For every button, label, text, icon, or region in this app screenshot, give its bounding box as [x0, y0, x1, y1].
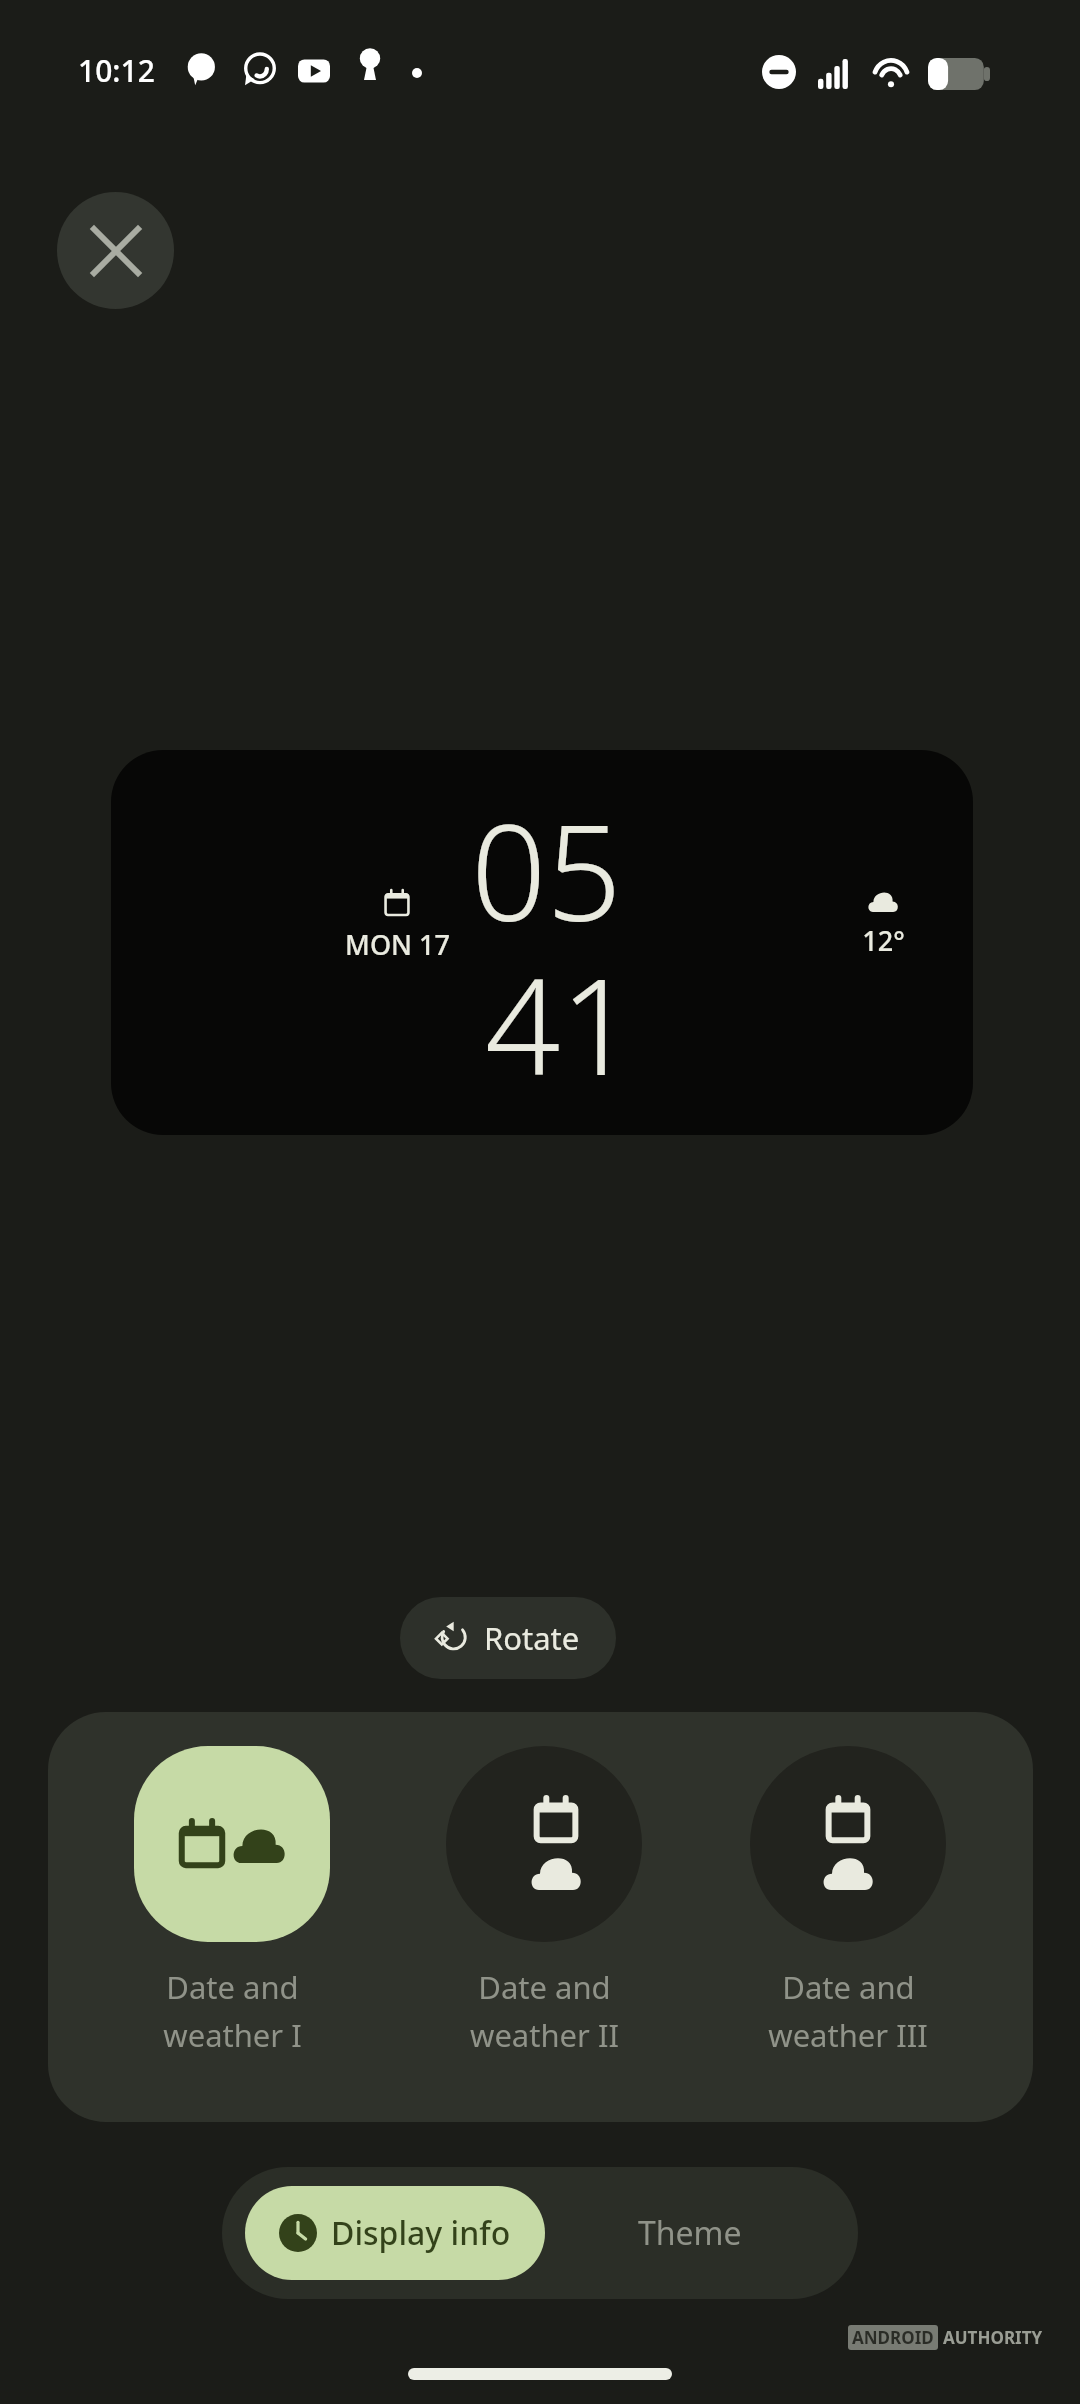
- staticText: 10:12: [78, 50, 155, 91]
- staticText: weather II: [470, 2014, 619, 2056]
- staticText: 05: [471, 780, 622, 960]
- button[interactable]: Close: [57, 192, 174, 309]
- staticText: AUTHORITY: [943, 2326, 1043, 2349]
- button[interactable]: Date and: [444, 1746, 644, 2056]
- staticText: ANDROID: [852, 2326, 934, 2349]
- staticText: Theme: [638, 2211, 742, 2255]
- staticText: Date and: [478, 1966, 611, 2008]
- button[interactable]: MON 17: [111, 750, 973, 1135]
- staticText: Date and: [782, 1966, 915, 2008]
- staticText: Date and: [166, 1966, 299, 2008]
- staticText: 12°: [862, 922, 905, 959]
- staticText: Display info: [331, 2211, 511, 2255]
- staticText: Rotate: [484, 1617, 580, 1659]
- staticText: weather III: [768, 2014, 928, 2056]
- button[interactable]: Theme: [522, 2167, 858, 2299]
- staticText: MON 17: [345, 926, 450, 963]
- button[interactable]: Rotate: [400, 1597, 616, 1679]
- staticText: weather I: [163, 2014, 302, 2056]
- button[interactable]: Date and: [748, 1746, 948, 2056]
- button[interactable]: Date and: [132, 1746, 332, 2056]
- staticText: 41: [485, 934, 636, 1114]
- button[interactable]: Display info: [245, 2186, 545, 2280]
